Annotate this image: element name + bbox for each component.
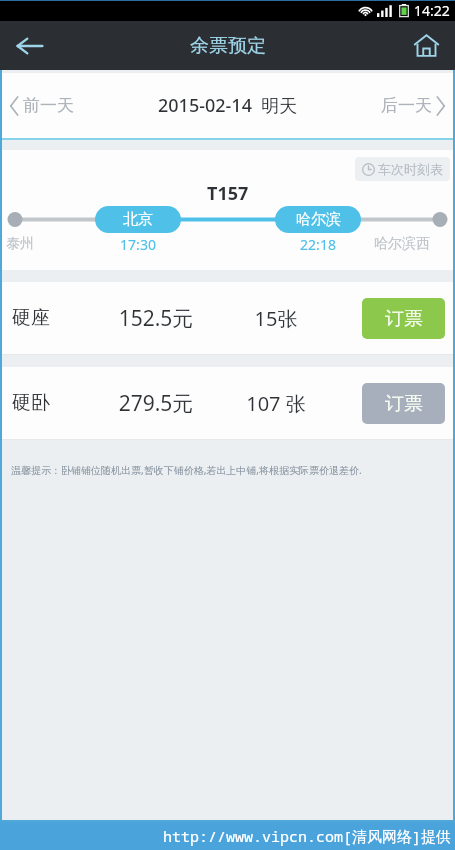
button[interactable]: Back bbox=[0, 21, 58, 70]
staticText: 107 张 bbox=[222, 390, 330, 417]
staticText: 15张 bbox=[222, 305, 330, 332]
staticText: 硬卧 bbox=[12, 391, 90, 415]
staticText: 哈尔滨西 bbox=[374, 235, 430, 253]
staticText: 前一天 bbox=[23, 95, 74, 116]
staticText: 泰州 bbox=[6, 235, 34, 253]
button[interactable]: 后一天 bbox=[320, 73, 455, 138]
button[interactable]: 2015-02-14 明天 bbox=[135, 73, 320, 138]
staticText: 余票预定 bbox=[190, 34, 266, 58]
button[interactable]: 车次时刻表 bbox=[355, 157, 450, 181]
staticText: 硬座 bbox=[12, 306, 90, 330]
button[interactable]: 哈尔滨 bbox=[275, 206, 361, 233]
staticText: 哈尔滨 bbox=[296, 210, 341, 229]
staticText: 后一天 bbox=[381, 95, 432, 116]
staticText: 17:30 bbox=[95, 235, 181, 254]
staticText: 22:18 bbox=[275, 235, 361, 254]
staticText: http://www.vipcn.com[清风网络]提供 bbox=[163, 826, 452, 846]
staticText: 车次时刻表 bbox=[378, 161, 443, 177]
staticText: 14:22 bbox=[414, 1, 450, 20]
button[interactable]: 前一天 bbox=[0, 73, 135, 138]
staticText: 订票 bbox=[385, 307, 423, 331]
staticText: 北京 bbox=[123, 210, 153, 229]
staticText: T157 bbox=[207, 181, 249, 206]
button[interactable]: 订票 bbox=[362, 298, 445, 339]
button[interactable]: 订票 bbox=[362, 383, 445, 424]
staticText: 温馨提示：卧铺铺位随机出票,暂收下铺价格,若出上中铺,将根据实际票价退差价. bbox=[11, 463, 362, 477]
button[interactable]: Home bbox=[397, 21, 455, 70]
staticText: 279.5元 bbox=[90, 389, 222, 418]
staticText: 2015-02-14 明天 bbox=[158, 93, 298, 118]
staticText: 152.5元 bbox=[90, 304, 222, 333]
button[interactable]: 北京 bbox=[95, 206, 181, 233]
staticText: 订票 bbox=[385, 392, 423, 416]
